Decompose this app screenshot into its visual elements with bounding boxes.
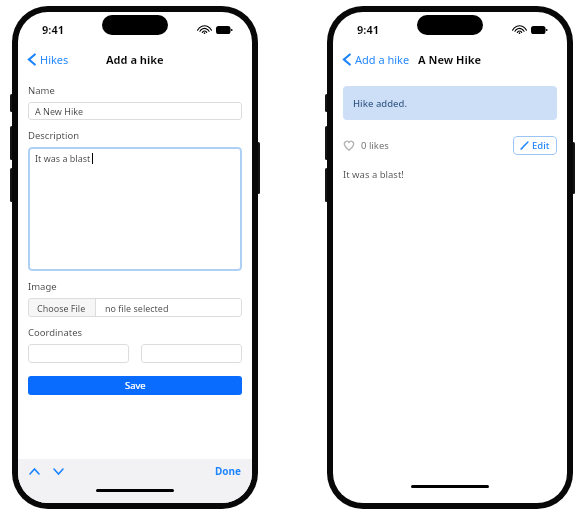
- button[interactable]: 0 likes: [343, 139, 393, 152]
- staticText: It was a blast: [35, 152, 91, 164]
- staticText: Edit: [532, 139, 550, 152]
- staticText: Description: [28, 129, 80, 142]
- button[interactable]: Hike added.: [343, 86, 557, 120]
- staticText: no file selected: [105, 302, 169, 314]
- staticText: 0 likes: [361, 139, 389, 152]
- button[interactable]: Add a hike: [333, 49, 418, 70]
- staticText: Add a hike: [355, 52, 410, 67]
- staticText: It was a blast!: [343, 168, 404, 181]
- staticText: A New Hike: [418, 52, 482, 67]
- button[interactable]: Done: [215, 464, 242, 478]
- button[interactable]: Hikes: [18, 49, 77, 70]
- button[interactable]: Next field: [50, 463, 66, 479]
- button[interactable]: Choose File: [28, 298, 242, 317]
- button[interactable]: Previous field: [26, 463, 42, 479]
- button[interactable]: [28, 344, 129, 363]
- button[interactable]: Edit: [513, 136, 557, 155]
- staticText: Image: [28, 280, 57, 293]
- staticText: 9:41: [357, 22, 379, 37]
- staticText: Name: [28, 84, 55, 97]
- staticText: 9:41: [42, 22, 64, 37]
- staticText: Add a hike: [106, 52, 164, 67]
- staticText: Save: [125, 379, 146, 392]
- staticText: A New Hike: [35, 105, 84, 117]
- button[interactable]: Save: [28, 376, 242, 395]
- staticText: Choose File: [37, 302, 86, 314]
- button[interactable]: It was a blast: [28, 147, 242, 271]
- staticText: Coordinates: [28, 326, 83, 339]
- staticText: Hikes: [40, 52, 69, 67]
- button[interactable]: [141, 344, 242, 363]
- staticText: Hike added.: [353, 97, 408, 110]
- button[interactable]: A New Hike: [28, 102, 242, 120]
